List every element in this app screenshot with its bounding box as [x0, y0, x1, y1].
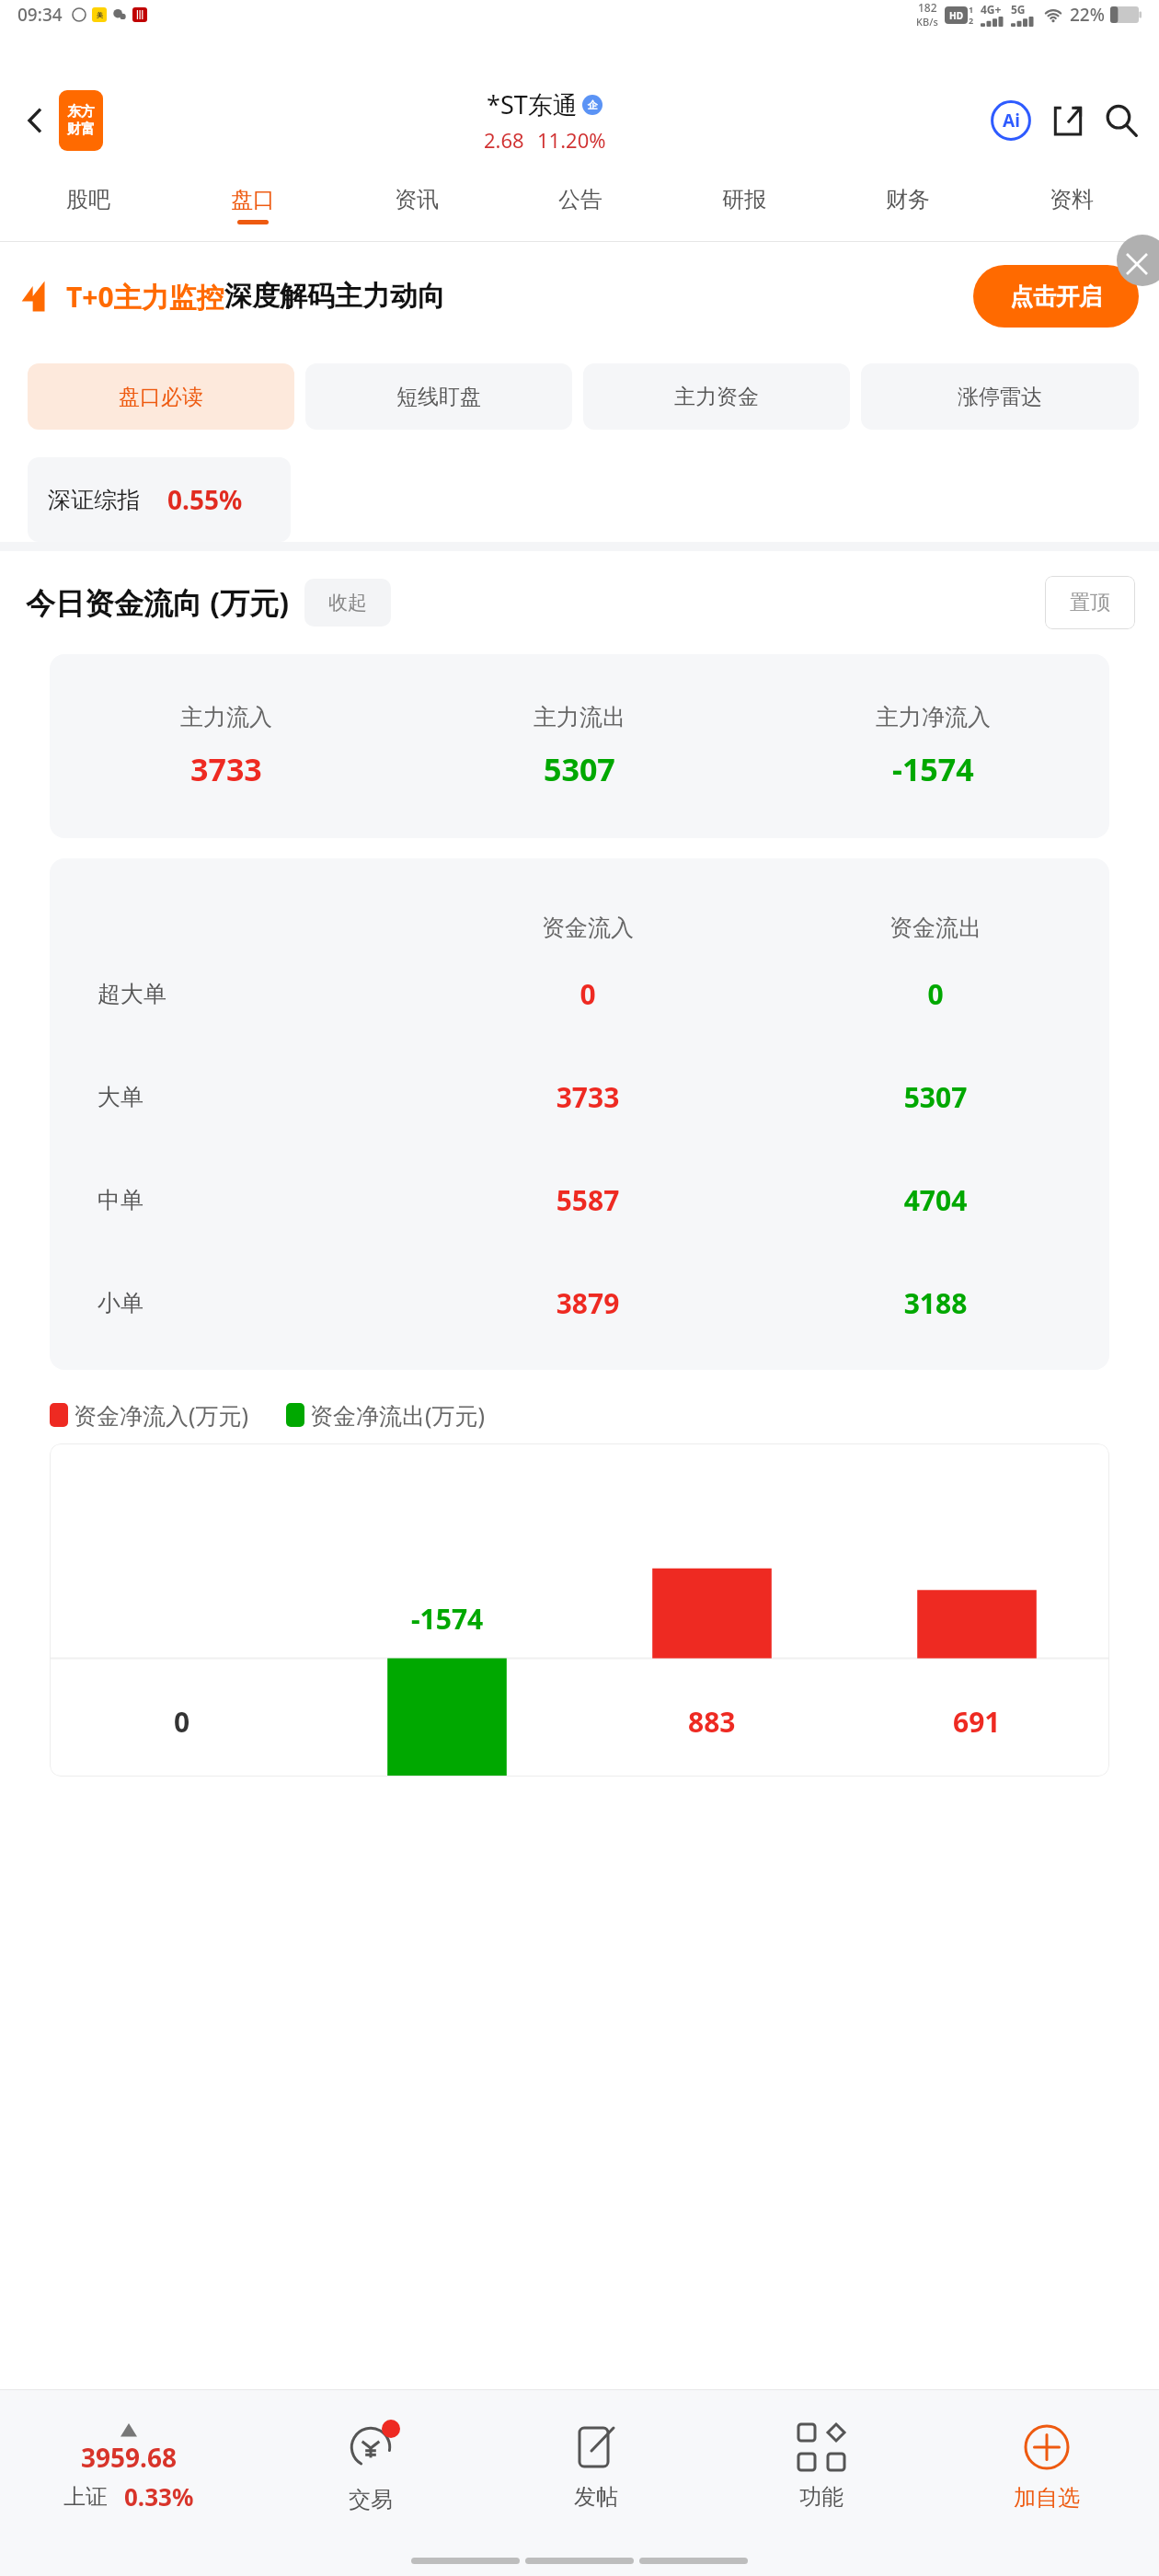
- button[interactable]: 财务: [826, 169, 990, 241]
- staticText: HD: [949, 9, 963, 22]
- staticText: 小单: [98, 1289, 143, 1317]
- staticText: 资料: [1050, 186, 1094, 213]
- staticText: 5G: [1011, 2, 1026, 17]
- button[interactable]: Trade: [258, 2390, 483, 2545]
- button[interactable]: 涨停雷达: [861, 363, 1139, 430]
- staticText: 3959.68: [81, 2440, 177, 2475]
- staticText: 上证: [63, 2483, 108, 2511]
- button[interactable]: Back: [13, 98, 57, 143]
- staticText: 超大单: [98, 980, 166, 1008]
- other: Functions: [798, 2424, 844, 2470]
- staticText: 3733: [190, 748, 262, 790]
- staticText: 691: [953, 1703, 1001, 1741]
- staticText: 加自选: [1014, 2484, 1080, 2512]
- button[interactable]: Post: [483, 2390, 708, 2545]
- staticText: 883: [688, 1703, 736, 1741]
- staticText: 大单: [98, 1083, 143, 1111]
- button[interactable]: Close: [1117, 235, 1159, 286]
- button[interactable]: 3959.68: [0, 2423, 258, 2513]
- staticText: 4G+: [981, 2, 1002, 17]
- other: Trade: [345, 2421, 396, 2473]
- staticText: 3879: [414, 1284, 762, 1322]
- button[interactable]: 资讯: [335, 169, 499, 241]
- staticText: 22%: [1070, 3, 1105, 27]
- button[interactable]: 股吧: [6, 169, 170, 241]
- staticText: 2: [969, 15, 974, 26]
- staticText: 主力资金: [674, 384, 759, 410]
- staticText: 主力净流入: [876, 703, 991, 731]
- button[interactable]: Functions: [708, 2390, 934, 2545]
- staticText: 深证综指: [48, 486, 140, 514]
- staticText: 点击开启: [1010, 282, 1102, 311]
- staticText: 1: [969, 4, 974, 15]
- staticText: 资金净流入(万元): [74, 1399, 249, 1431]
- staticText: KB/s: [916, 15, 938, 29]
- staticText: 主力流出: [534, 703, 625, 731]
- button[interactable]: Share: [1043, 96, 1093, 145]
- staticText: -1574: [411, 1600, 484, 1638]
- staticText: 收起: [328, 591, 367, 615]
- button[interactable]: 资料: [990, 169, 1153, 241]
- staticText: 财务: [886, 186, 930, 213]
- staticText: 美: [97, 11, 103, 19]
- staticText: 公告: [558, 186, 602, 213]
- staticText: 182: [918, 0, 937, 15]
- staticText: 中单: [98, 1186, 143, 1214]
- button[interactable]: 主力资金: [583, 363, 850, 430]
- staticText: 置顶: [1070, 590, 1110, 615]
- staticText: 5307: [544, 748, 615, 790]
- button[interactable]: 收起: [304, 579, 391, 627]
- button[interactable]: 点击开启: [973, 265, 1139, 328]
- staticText: 3188: [762, 1284, 1109, 1322]
- staticText: -1574: [892, 748, 974, 790]
- staticText: 主力流入: [180, 703, 272, 731]
- button[interactable]: AI: [986, 96, 1036, 145]
- staticText: 4704: [762, 1181, 1109, 1219]
- staticText: 财富: [67, 121, 95, 138]
- button[interactable]: East Money: [59, 90, 103, 151]
- staticText: 0: [414, 975, 762, 1013]
- staticText: 2.68: [484, 126, 524, 154]
- button[interactable]: Search: [1096, 96, 1146, 145]
- staticText: 东方: [67, 103, 95, 121]
- staticText: 短线盯盘: [396, 384, 481, 410]
- staticText: 资金净流出(万元): [310, 1399, 486, 1431]
- staticText: 0.33%: [124, 2480, 194, 2513]
- staticText: 0: [762, 975, 1109, 1013]
- staticText: 涨停雷达: [958, 384, 1042, 410]
- staticText: 今日资金流向 (万元): [26, 582, 290, 623]
- staticText: 11.20%: [537, 126, 606, 154]
- button[interactable]: 盘口: [170, 169, 335, 241]
- staticText: 研报: [722, 186, 766, 213]
- button[interactable]: 盘口必读: [28, 363, 294, 430]
- staticText: 0: [174, 1703, 190, 1741]
- staticText: T+0主力监控: [66, 278, 224, 316]
- button[interactable]: 研报: [662, 169, 826, 241]
- staticText: 0.55%: [167, 482, 243, 517]
- button[interactable]: 短线盯盘: [305, 363, 572, 430]
- staticText: 资讯: [395, 186, 439, 213]
- staticText: 3733: [414, 1078, 762, 1116]
- staticText: 发帖: [574, 2483, 618, 2511]
- button[interactable]: 置顶: [1045, 576, 1135, 629]
- other: Post: [573, 2424, 619, 2470]
- button[interactable]: Add to watchlist: [934, 2390, 1159, 2545]
- staticText: 资金流入: [414, 914, 762, 942]
- other: Add to watchlist: [1023, 2423, 1071, 2471]
- staticText: 交易: [349, 2486, 393, 2513]
- staticText: 5307: [762, 1078, 1109, 1116]
- staticText: 09:34: [17, 3, 63, 27]
- staticText: 资金流出: [762, 914, 1109, 942]
- staticText: *ST东通: [487, 87, 578, 121]
- staticText: 功能: [799, 2483, 843, 2511]
- staticText: 股吧: [66, 186, 110, 213]
- staticText: 5587: [414, 1181, 762, 1219]
- button[interactable]: 深证综指: [28, 457, 291, 542]
- staticText: 盘口: [231, 186, 275, 213]
- staticText: Ai: [1003, 109, 1020, 132]
- button[interactable]: 公告: [499, 169, 662, 241]
- staticText: 企: [588, 98, 598, 111]
- staticText: 盘口必读: [119, 384, 203, 410]
- staticText: 深度解码主力动向: [224, 279, 445, 314]
